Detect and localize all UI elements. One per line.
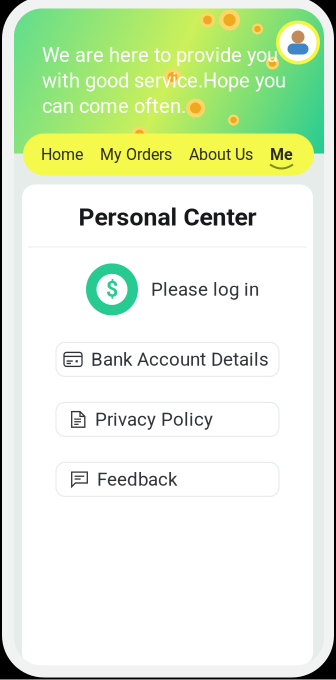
- staticText: My Orders: [100, 145, 172, 164]
- staticText: Personal Center: [78, 202, 256, 231]
- staticText: About Us: [189, 145, 253, 164]
- staticText: Please log in: [151, 278, 259, 300]
- staticText: can come often.: [42, 94, 186, 118]
- button[interactable]: My Orders: [100, 134, 172, 175]
- staticText: $: [106, 277, 118, 302]
- staticText: Home: [41, 145, 83, 164]
- button[interactable]: Customer service: [276, 20, 320, 64]
- button[interactable]: Feedback: [56, 462, 279, 496]
- button[interactable]: Me: [270, 134, 293, 175]
- button[interactable]: Privacy Policy: [56, 402, 279, 436]
- staticText: with good service.Hope you: [42, 69, 286, 92]
- staticText: Bank Account Details: [91, 348, 269, 370]
- button[interactable]: Home: [41, 134, 83, 175]
- button[interactable]: About Us: [189, 134, 253, 175]
- staticText: Feedback: [97, 468, 177, 490]
- staticText: We are here to provide you: [42, 43, 278, 67]
- staticText: Me: [270, 145, 293, 164]
- staticText: Privacy Policy: [95, 408, 213, 430]
- button[interactable]: Bank Account Details: [56, 342, 279, 376]
